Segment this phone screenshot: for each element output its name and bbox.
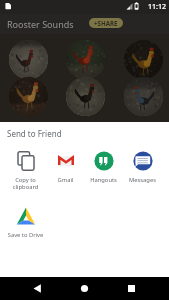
button[interactable]: Rooster sound 6	[124, 77, 163, 116]
staticText: Copy to clipboard	[6, 176, 45, 191]
button[interactable]: Rooster sound 3	[124, 40, 163, 79]
staticText: +SHARE	[94, 19, 118, 27]
button[interactable]: Rooster sound 1	[9, 40, 48, 79]
staticText: Rooster Sounds	[7, 18, 74, 30]
button[interactable]: Back	[26, 277, 49, 300]
staticText: Gmail	[46, 176, 85, 184]
staticText: Messages	[123, 176, 162, 184]
button[interactable]: Recent apps	[120, 277, 143, 300]
button[interactable]: +SHARE	[89, 18, 123, 28]
button[interactable]: Copy to clipboard	[6, 151, 45, 193]
button[interactable]: Messages	[123, 151, 162, 193]
button[interactable]: Rooster sound 2	[66, 40, 105, 79]
staticText: 11:12	[148, 2, 166, 12]
button[interactable]: Save to Drive	[6, 206, 45, 248]
staticText: Send to Friend	[7, 128, 62, 139]
button[interactable]: Gmail	[46, 151, 85, 193]
staticText: Save to Drive	[6, 231, 45, 239]
button[interactable]: Rooster sound 4	[9, 77, 48, 116]
button[interactable]: Rooster sound 5	[66, 77, 105, 116]
staticText: Hangouts	[84, 176, 123, 184]
button[interactable]: Hangouts	[84, 151, 123, 193]
button[interactable]: Home	[73, 277, 96, 300]
